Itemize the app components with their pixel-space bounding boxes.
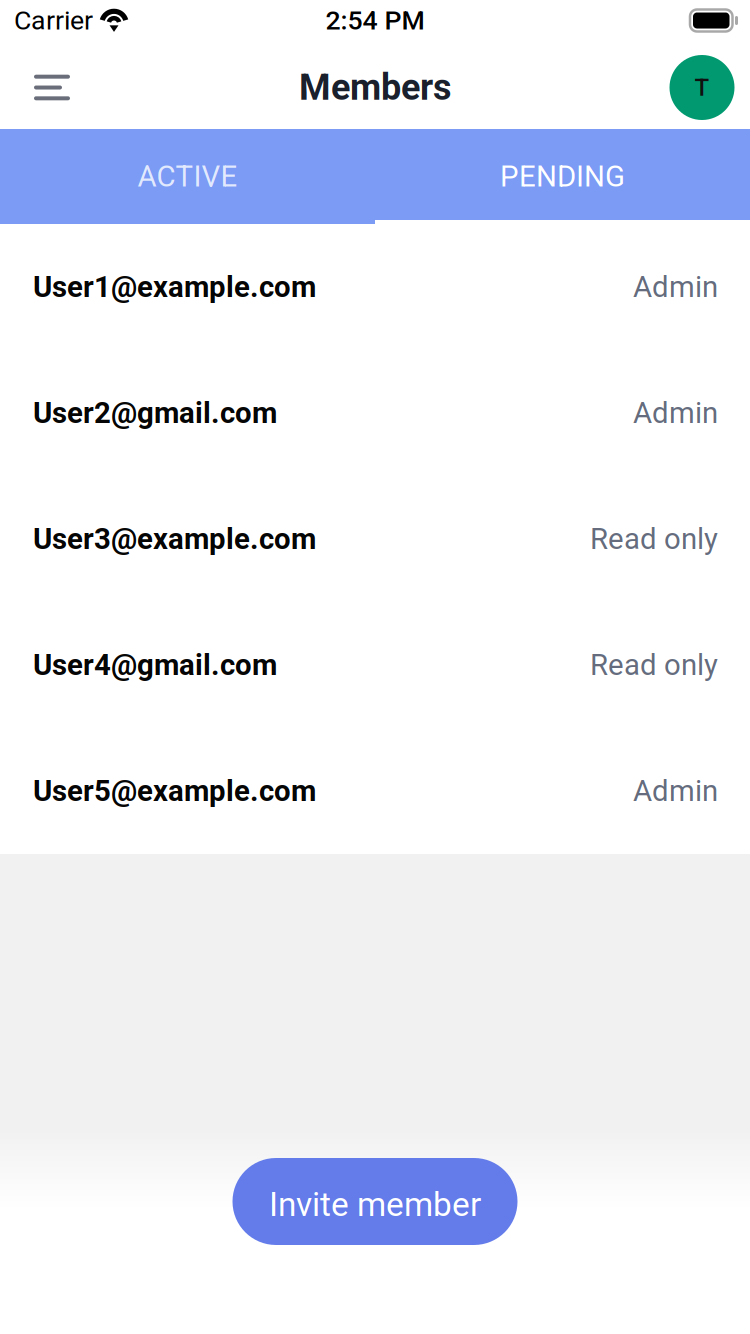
staticText: User5@example.com — [33, 774, 316, 808]
button[interactable]: Menu — [19, 54, 85, 120]
button[interactable]: User4@gmail.com — [0, 602, 750, 728]
button[interactable]: Profile — [667, 52, 737, 122]
staticText: Carrier — [14, 5, 93, 36]
staticText: Admin — [633, 270, 718, 304]
staticText: User3@example.com — [33, 522, 316, 556]
button[interactable]: User3@example.com — [0, 476, 750, 602]
staticText: Members — [299, 66, 451, 109]
staticText: Invite member — [269, 1185, 481, 1224]
staticText: 2:54 PM — [325, 5, 424, 36]
button[interactable]: Invite member — [232, 1158, 517, 1245]
staticText: User2@gmail.com — [33, 396, 277, 430]
staticText: Admin — [633, 774, 718, 808]
button[interactable]: User1@example.com — [0, 224, 750, 350]
staticText: T — [694, 73, 709, 101]
staticText: Admin — [633, 396, 718, 430]
button[interactable]: User2@gmail.com — [0, 350, 750, 476]
button[interactable]: PENDING — [375, 129, 750, 224]
staticText: ACTIVE — [137, 159, 237, 194]
staticText: Read only — [590, 648, 718, 682]
staticText: User4@gmail.com — [33, 648, 277, 682]
staticText: User1@example.com — [33, 270, 316, 304]
button[interactable]: User5@example.com — [0, 728, 750, 854]
button[interactable]: ACTIVE — [0, 129, 375, 224]
staticText: Read only — [590, 522, 718, 556]
staticText: PENDING — [500, 159, 625, 194]
